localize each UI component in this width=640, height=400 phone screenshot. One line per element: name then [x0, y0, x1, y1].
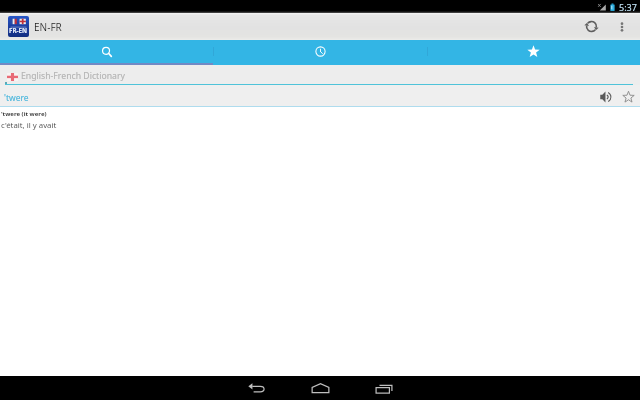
staticText: 5:37 — [619, 1, 637, 13]
button[interactable]: English-French Dictionary search field — [0, 65, 640, 85]
button[interactable]: Search — [0, 40, 214, 65]
button[interactable]: Speak — [595, 86, 617, 108]
button[interactable]: Back — [224, 376, 288, 400]
button[interactable]: FR-EN — [0, 13, 68, 40]
staticText: 'twere (it were) — [1, 110, 47, 118]
staticText: 'twere — [4, 92, 29, 104]
button[interactable]: History — [214, 40, 427, 65]
button[interactable]: Recent apps — [352, 376, 416, 400]
button[interactable]: 'twere — [0, 85, 640, 107]
staticText: EN-FR — [34, 20, 62, 34]
staticText: c'était, il y avait — [1, 120, 57, 131]
staticText: FR-EN — [9, 26, 27, 34]
button[interactable]: Refresh — [576, 13, 606, 40]
button[interactable]: Add to favorites — [617, 86, 639, 108]
button[interactable]: Favorites — [427, 40, 640, 65]
staticText: English-French Dictionary — [21, 70, 125, 82]
button[interactable]: More options — [606, 13, 638, 40]
button[interactable]: Home — [288, 376, 352, 400]
